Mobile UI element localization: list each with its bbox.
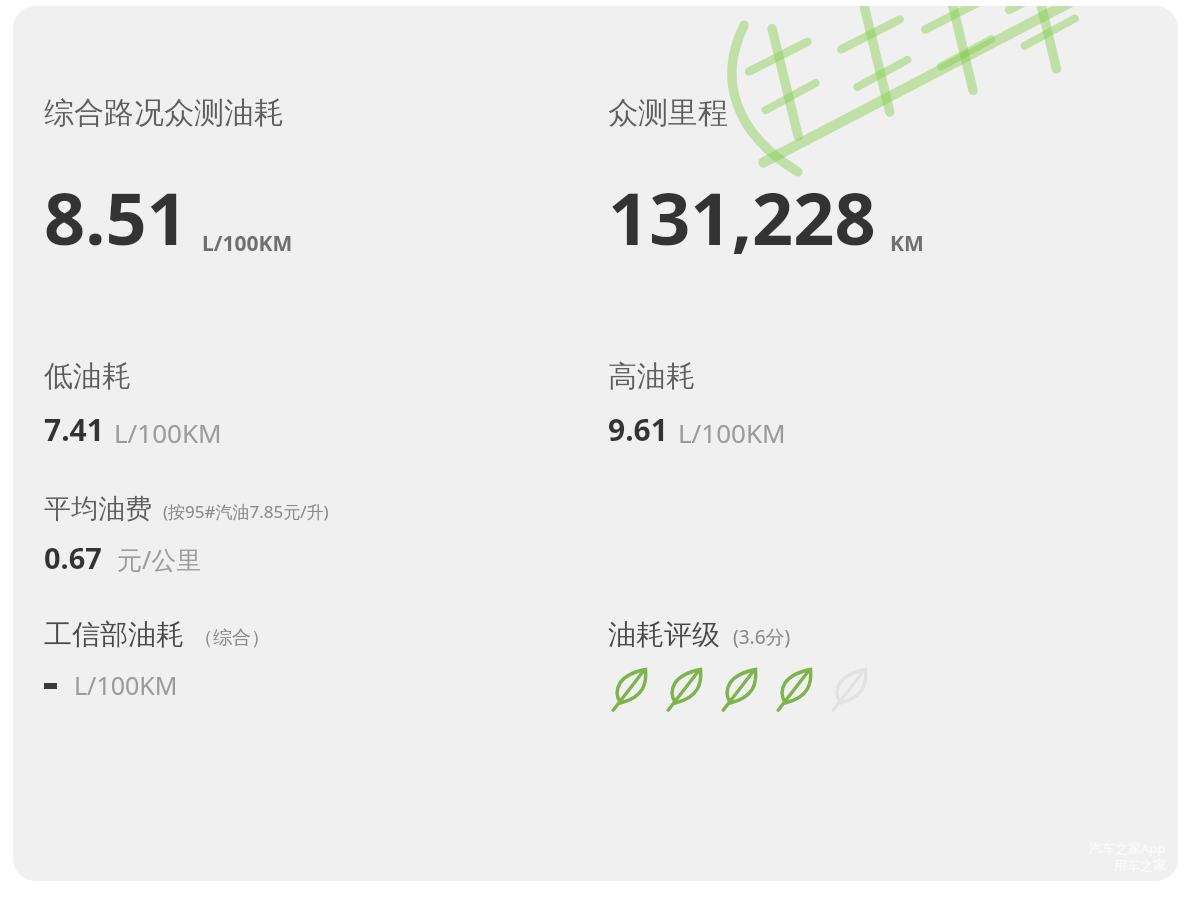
staticText: 众测里程 — [608, 94, 728, 132]
staticText: 工信部油耗 — [44, 617, 184, 652]
staticText: L/100KM — [202, 229, 293, 258]
staticText: 平均油费 — [44, 492, 152, 526]
button[interactable]: 低油耗 — [44, 358, 595, 450]
staticText: 7.41 — [44, 409, 104, 450]
staticText: 0.67 — [44, 538, 102, 577]
staticText: KM — [890, 229, 924, 258]
staticText: 油耗评级 — [608, 617, 720, 652]
staticText: （综合） — [194, 626, 270, 650]
other: 油耗评级 3.6 分，共 5 片叶 — [608, 663, 875, 713]
staticText: 9.61 — [608, 409, 668, 450]
staticText: 131,228 — [608, 168, 876, 266]
staticText: 用车之家 — [1114, 857, 1166, 873]
staticText: 汽车之家App — [1089, 839, 1166, 857]
staticText: (3.6分) — [733, 624, 791, 650]
staticText: 元/公里 — [117, 542, 202, 576]
button[interactable]: 油耗评级 — [608, 617, 1178, 713]
staticText: 高油耗 — [608, 358, 695, 395]
button[interactable]: 平均油费 — [44, 492, 595, 577]
staticText: 低油耗 — [44, 358, 131, 395]
staticText: L/100KM — [678, 415, 786, 450]
button[interactable]: 综合路况众测油耗 — [44, 6, 595, 266]
staticText: 综合路况众测油耗 — [44, 94, 284, 132]
staticText: (按95#汽油7.85元/升) — [163, 500, 329, 523]
staticText: L/100KM — [114, 415, 222, 450]
button[interactable]: 众测里程 — [608, 6, 1178, 266]
button[interactable]: 工信部油耗 — [44, 617, 595, 702]
staticText: 8.51 — [44, 168, 188, 266]
button[interactable]: 高油耗 — [608, 358, 1178, 450]
staticText: L/100KM — [74, 668, 178, 702]
